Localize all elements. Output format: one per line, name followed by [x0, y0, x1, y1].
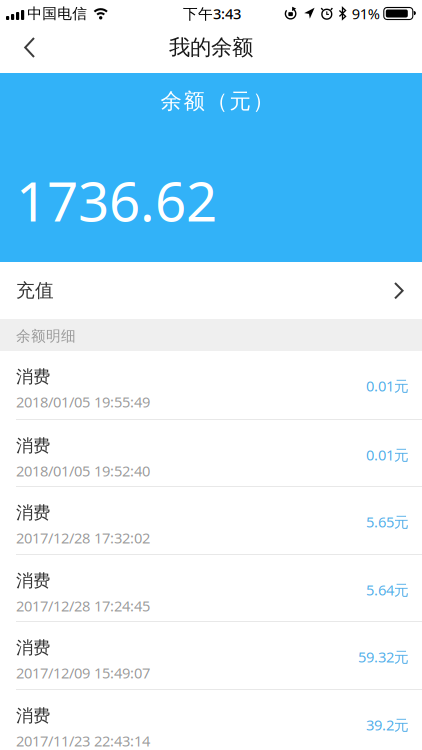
staticText: 0.01元 — [366, 445, 409, 464]
staticText: 0.01元 — [366, 376, 409, 395]
staticText: 5.65元 — [366, 512, 409, 531]
staticText: 消费 — [16, 705, 50, 726]
staticText: 59.32元 — [358, 647, 409, 666]
staticText: 消费 — [16, 366, 50, 387]
staticText: 2017/12/28 17:24:45 — [16, 596, 150, 615]
staticText: 充值 — [16, 279, 54, 302]
staticText: 2017/11/23 22:43:14 — [16, 731, 150, 750]
staticText: 消费 — [16, 570, 50, 591]
button[interactable]: 返回 — [0, 22, 55, 73]
staticText: 39.2元 — [366, 715, 409, 734]
staticText: 下午3:43 — [183, 4, 241, 23]
staticText: 消费 — [16, 435, 50, 456]
staticText: 余额（元） — [160, 88, 273, 114]
staticText: 消费 — [16, 637, 50, 658]
staticText: 2017/12/28 17:32:02 — [16, 528, 150, 547]
staticText: 2018/01/05 19:55:49 — [16, 392, 150, 411]
staticText: 1736.62 — [16, 164, 217, 237]
staticText: 我的余额 — [169, 34, 253, 61]
staticText: 余额明细 — [16, 327, 76, 345]
staticText: 2017/12/09 15:49:07 — [16, 663, 150, 682]
staticText: 消费 — [16, 502, 50, 523]
staticText: 91% — [352, 4, 380, 23]
button[interactable]: 充值 — [0, 262, 422, 319]
staticText: 2018/01/05 19:52:40 — [16, 461, 150, 480]
staticText: 中国电信 — [27, 4, 87, 22]
staticText: 5.64元 — [366, 580, 409, 599]
